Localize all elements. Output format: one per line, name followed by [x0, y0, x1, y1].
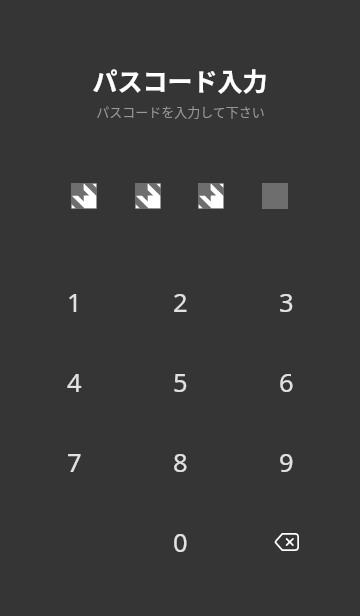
staticText: 9: [279, 445, 294, 480]
staticText: 0: [173, 525, 188, 560]
button[interactable]: 3: [246, 262, 326, 342]
staticText: 1: [67, 285, 82, 320]
staticText: パスコードを入力して下さい: [96, 102, 265, 121]
staticText: 6: [279, 365, 294, 400]
button[interactable]: 4: [34, 342, 114, 422]
staticText: 7: [67, 445, 82, 480]
staticText: パスコード入力: [92, 62, 268, 98]
button[interactable]: 6: [246, 342, 326, 422]
button[interactable]: 7: [34, 422, 114, 502]
staticText: 2: [173, 285, 188, 320]
button[interactable]: 5: [140, 342, 220, 422]
button[interactable]: 2: [140, 262, 220, 342]
button[interactable]: Backspace: [246, 502, 326, 582]
staticText: 5: [173, 365, 188, 400]
staticText: 8: [173, 445, 188, 480]
other: Backspace: [274, 533, 299, 551]
staticText: 3: [279, 285, 294, 320]
staticText: 4: [67, 365, 82, 400]
button[interactable]: 8: [140, 422, 220, 502]
button[interactable]: 0: [140, 502, 220, 582]
button[interactable]: 9: [246, 422, 326, 502]
button[interactable]: 1: [34, 262, 114, 342]
